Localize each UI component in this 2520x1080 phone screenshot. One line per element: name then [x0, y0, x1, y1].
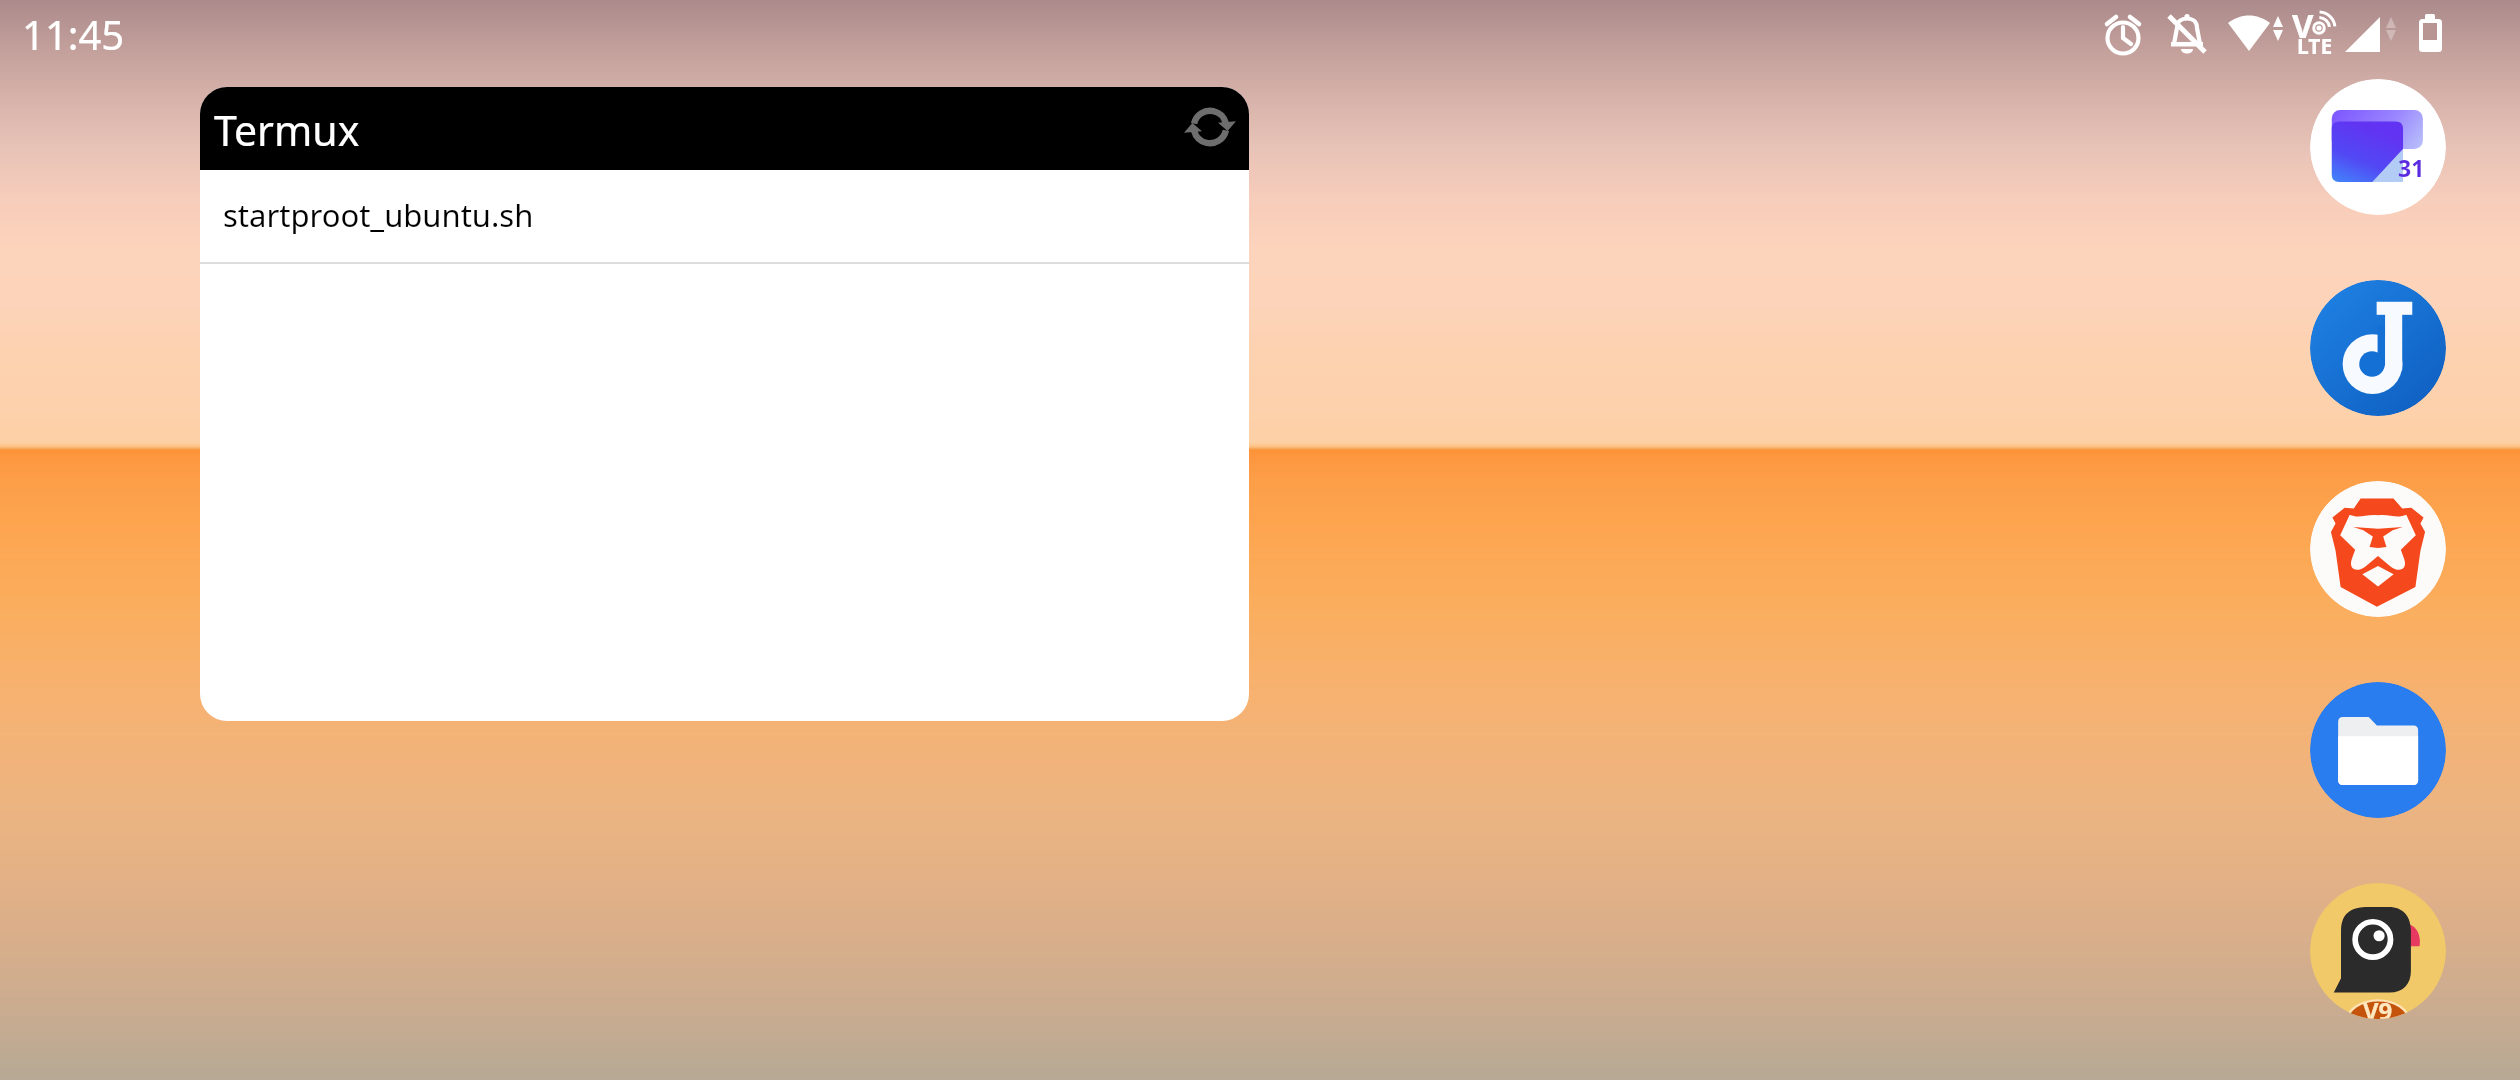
button[interactable]: Refresh	[1178, 95, 1242, 159]
staticText: LTE	[2297, 32, 2333, 61]
staticText: V	[2292, 3, 2314, 48]
staticText: startproot_ubuntu.sh	[223, 194, 534, 236]
staticText: 31	[2398, 152, 2425, 183]
button[interactable]: SmartTube	[2310, 883, 2446, 1019]
button[interactable]: Joplin	[2310, 280, 2446, 416]
button[interactable]: Calendar	[2310, 79, 2446, 215]
button[interactable]: Brave Browser	[2310, 481, 2446, 617]
staticText: Termux	[214, 102, 360, 158]
button[interactable]: Files	[2310, 682, 2446, 818]
staticText: V9	[2363, 994, 2393, 1019]
button[interactable]: startproot_ubuntu.sh	[200, 170, 1249, 262]
staticText: 11:45	[22, 7, 125, 61]
